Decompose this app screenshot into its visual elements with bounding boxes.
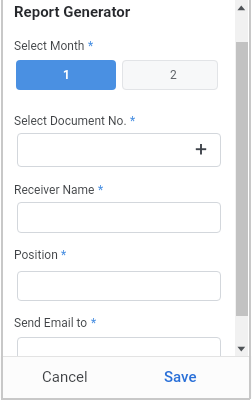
staticText: 1 bbox=[63, 68, 70, 82]
staticText: * bbox=[130, 114, 136, 128]
staticText: 2 bbox=[170, 68, 177, 82]
button[interactable]: 2 bbox=[122, 60, 218, 90]
button[interactable] bbox=[17, 271, 221, 301]
button[interactable] bbox=[17, 133, 221, 167]
staticText: Save bbox=[164, 368, 197, 386]
button[interactable] bbox=[195, 143, 207, 155]
button[interactable] bbox=[17, 202, 221, 233]
staticText: Select Document No. bbox=[14, 114, 127, 128]
staticText: * bbox=[98, 183, 104, 197]
staticText: * bbox=[91, 316, 97, 330]
button[interactable] bbox=[17, 337, 221, 367]
button[interactable]: Cancel bbox=[33, 362, 97, 392]
staticText: Cancel bbox=[42, 368, 88, 386]
staticText: * bbox=[61, 248, 67, 262]
staticText: Report Generator bbox=[14, 3, 131, 21]
staticText: * bbox=[88, 39, 94, 53]
staticText: Position bbox=[14, 248, 58, 262]
staticText: Send Email to bbox=[14, 316, 88, 330]
staticText: Select Month bbox=[14, 39, 85, 53]
button[interactable]: 1 bbox=[16, 60, 116, 90]
button[interactable]: Save bbox=[150, 362, 210, 392]
staticText: Receiver Name bbox=[14, 183, 95, 197]
